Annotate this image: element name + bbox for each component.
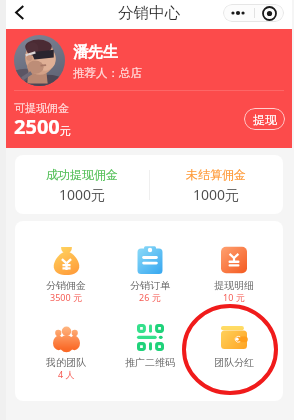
staticText: 潘先生 (73, 43, 118, 62)
staticText: 分销中心 (118, 3, 180, 23)
staticText: 3500 元 (50, 291, 82, 303)
staticText: 分销佣金 (46, 279, 86, 292)
staticText: 2500 (14, 113, 60, 140)
button[interactable]: 提现 (244, 108, 285, 130)
staticText: 10 元 (223, 291, 245, 303)
staticText: 26 元 (139, 291, 161, 303)
staticText: 成功提现佣金 (46, 167, 118, 182)
button[interactable]: Close (254, 4, 284, 22)
staticText: 提现 (253, 112, 277, 127)
staticText: 1000元 (193, 185, 240, 204)
button[interactable]: 我的团队 (24, 322, 108, 381)
button[interactable]: 成功提现佣金 (15, 155, 149, 214)
staticText: 团队分红 (214, 356, 254, 369)
staticText: 推荐人：总店 (73, 66, 142, 80)
button[interactable]: More options (223, 4, 253, 22)
button[interactable]: 未结算佣金 (149, 155, 283, 214)
button[interactable]: 提现明细 (192, 245, 276, 304)
staticText: 推广二维码 (125, 356, 175, 369)
staticText: 可提现佣金 (14, 101, 69, 115)
button[interactable]: 分销佣金 (24, 245, 108, 304)
button[interactable]: Back (11, 0, 27, 27)
staticText: 未结算佣金 (186, 167, 246, 182)
button[interactable]: 团队分红 (192, 322, 276, 369)
staticText: 1000元 (59, 185, 106, 204)
staticText: 我的团队 (46, 356, 86, 369)
staticText: 分销订单 (130, 279, 170, 292)
staticText: 提现明细 (214, 279, 254, 292)
staticText: 4 人 (58, 368, 75, 380)
staticText: 元 (60, 124, 71, 138)
button[interactable]: 推广二维码 (108, 322, 192, 369)
button[interactable]: 分销订单 (108, 245, 192, 304)
